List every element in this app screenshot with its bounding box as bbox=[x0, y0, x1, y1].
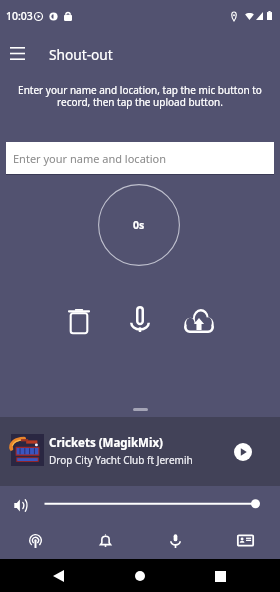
button[interactable]: Home bbox=[125, 561, 155, 591]
button[interactable]: Record bbox=[140, 523, 210, 558]
button[interactable]: Upload bbox=[182, 304, 216, 338]
button[interactable]: Enter your name and location bbox=[6, 142, 274, 175]
button[interactable]: Recent apps bbox=[205, 561, 235, 591]
button[interactable]: Seek bar bbox=[40, 495, 268, 514]
staticText: Crickets (MagikMix) bbox=[49, 435, 163, 451]
staticText: 10:03 bbox=[6, 9, 33, 23]
button[interactable]: Back bbox=[43, 561, 73, 591]
staticText: Drop City Yacht Club ft Jeremih bbox=[49, 453, 193, 467]
button[interactable]: Contacts bbox=[210, 523, 280, 558]
staticText: Enter your name and location, tap the mi… bbox=[14, 83, 266, 109]
button[interactable]: Delete recording bbox=[62, 304, 96, 338]
staticText: Shout-out bbox=[49, 45, 113, 64]
button[interactable]: Crickets (MagikMix) bbox=[0, 417, 280, 483]
button[interactable]: Menu bbox=[3, 39, 31, 67]
staticText: 0s bbox=[133, 218, 145, 232]
button[interactable]: Volume bbox=[9, 494, 31, 515]
button[interactable]: Record bbox=[123, 302, 157, 336]
button[interactable]: Play bbox=[230, 439, 256, 465]
button[interactable]: Alerts bbox=[70, 523, 140, 558]
staticText: Enter your name and location bbox=[13, 151, 167, 166]
button[interactable]: Broadcast bbox=[0, 523, 70, 558]
